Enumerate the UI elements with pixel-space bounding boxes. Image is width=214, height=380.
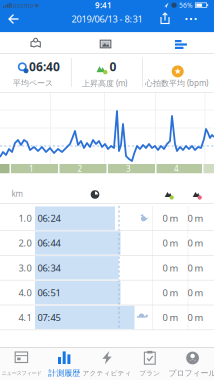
staticText: プロフィール <box>169 368 214 378</box>
staticText: 3.0 <box>18 262 31 274</box>
staticText: 計測履歴 <box>48 368 80 378</box>
button[interactable]: Photos <box>71 32 143 54</box>
staticText: 1.0 <box>18 212 31 224</box>
staticText: 0 m <box>162 212 178 224</box>
staticText: 06:51 <box>37 286 60 299</box>
button[interactable]: Statistics <box>143 32 214 54</box>
staticText: 3 <box>126 163 131 174</box>
staticText: ニュースフィード <box>1 370 41 376</box>
staticText: 4 <box>174 163 179 174</box>
button[interactable]: Map <box>0 32 71 54</box>
staticText: 0 m <box>187 311 203 324</box>
staticText: アクティビティ <box>82 369 131 377</box>
staticText: 0 m <box>187 262 203 274</box>
staticText: 上昇高度 (m) <box>82 78 127 88</box>
button[interactable]: アクティビティ <box>86 347 128 380</box>
button[interactable]: ニュースフィード <box>0 347 43 380</box>
button[interactable]: プロフィール <box>171 347 214 380</box>
staticText: 2019/06/13 - 8:31 <box>71 13 142 25</box>
staticText: 0 m <box>162 286 178 299</box>
staticText: 9:41 <box>95 0 112 10</box>
staticText: docomo <box>8 1 33 10</box>
button[interactable]: More <box>180 0 202 28</box>
button[interactable]: 計測履歴 <box>43 347 86 380</box>
staticText: 06:44 <box>37 237 60 249</box>
staticText: 07:45 <box>37 311 60 324</box>
staticText: 0 m <box>187 237 203 249</box>
button[interactable]: Back <box>0 0 26 28</box>
staticText: 0 m <box>162 237 178 249</box>
staticText: 心拍数平均 (bpm) <box>145 78 208 88</box>
staticText: km <box>11 188 22 199</box>
staticText: 2 <box>77 163 82 174</box>
staticText: プラン <box>139 369 160 377</box>
staticText: 平均ペース <box>13 78 53 88</box>
staticText: 0 m <box>162 311 178 324</box>
staticText: 56% <box>179 1 193 10</box>
staticText: 06:34 <box>37 262 60 274</box>
staticText: 4.0 <box>18 286 31 299</box>
staticText: 0 m <box>162 262 178 274</box>
staticText: 4.1 <box>18 311 31 324</box>
staticText: 06:40 <box>29 58 60 74</box>
staticText: 1 <box>29 163 34 174</box>
button[interactable]: プラン <box>128 347 171 380</box>
button[interactable]: Share <box>155 0 175 28</box>
staticText: 0 m <box>187 212 203 224</box>
staticText: 0 <box>109 58 116 74</box>
staticText: 0 m <box>187 286 203 299</box>
staticText: 06:24 <box>37 212 60 224</box>
staticText: 2.0 <box>18 237 31 249</box>
